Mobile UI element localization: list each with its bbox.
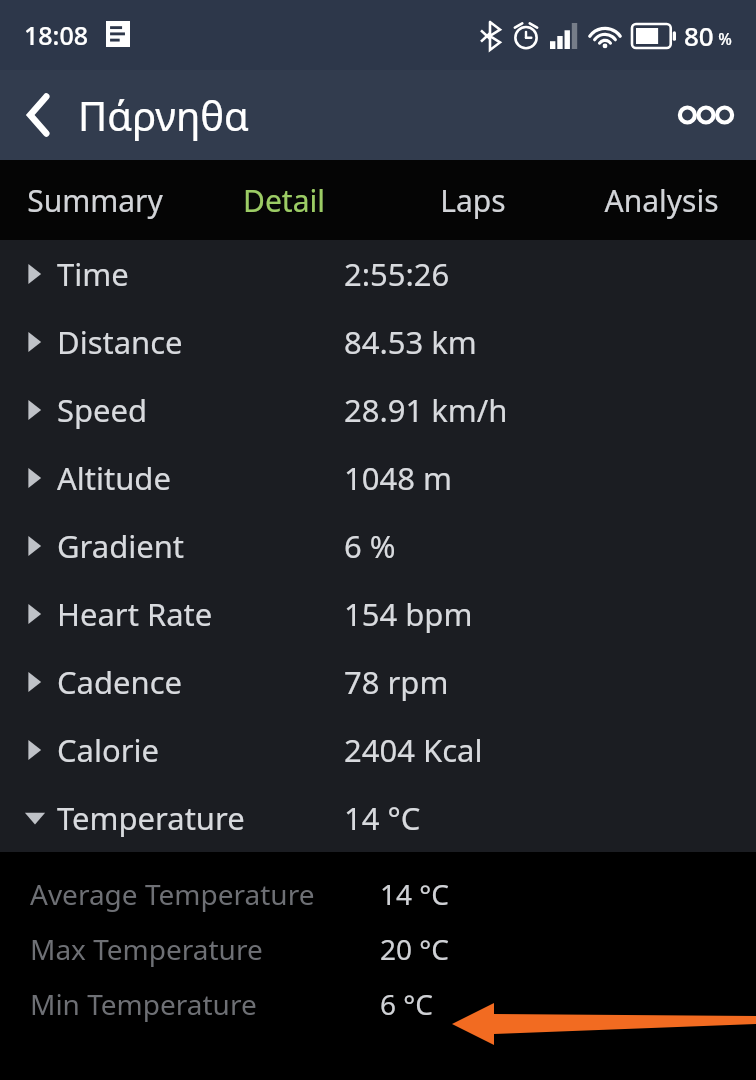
staticText: 14 °C [344, 797, 421, 839]
button[interactable]: Calorie [0, 716, 756, 784]
staticText: Calorie [57, 729, 160, 771]
staticText: Max Temperature [30, 930, 263, 968]
staticText: 14 °C [380, 875, 449, 913]
staticText: 2404 Kcal [344, 729, 483, 771]
staticText: Time [57, 253, 129, 295]
button[interactable]: Gradient [0, 512, 756, 580]
staticText: 6 °C [380, 985, 433, 1023]
button[interactable]: Speed [0, 376, 756, 444]
staticText: % [714, 28, 732, 50]
button[interactable]: Laps [378, 160, 567, 240]
button[interactable]: Heart Rate [0, 580, 756, 648]
button[interactable]: Summary [0, 160, 189, 240]
staticText: Πάρνηθα [78, 88, 249, 142]
button[interactable]: Temperature [0, 784, 756, 852]
staticText: 28.91 km/h [344, 389, 508, 431]
staticText: Gradient [57, 525, 185, 567]
staticText: Detail [243, 180, 325, 221]
staticText: Average Temperature [30, 875, 315, 913]
staticText: Cadence [57, 661, 183, 703]
button[interactable]: Altitude [0, 444, 756, 512]
staticText: 20 °C [380, 930, 449, 968]
staticText: Analysis [604, 180, 719, 221]
staticText: Speed [57, 389, 148, 431]
button[interactable]: Distance [0, 308, 756, 376]
staticText: 78 rpm [344, 661, 449, 703]
staticText: Altitude [57, 457, 171, 499]
button[interactable]: Max Temperature [0, 921, 756, 976]
button[interactable]: Detail [189, 160, 378, 240]
button[interactable]: Time [0, 240, 756, 308]
staticText: 18:08 [24, 18, 89, 52]
button[interactable]: Cadence [0, 648, 756, 716]
other: Back [26, 94, 52, 136]
button[interactable]: Average Temperature [0, 866, 756, 921]
staticText: Laps [440, 180, 506, 221]
staticText: 80 [684, 18, 714, 53]
staticText: 84.53 km [344, 321, 477, 363]
staticText: Heart Rate [57, 593, 213, 635]
button[interactable]: Analysis [567, 160, 756, 240]
staticText: 154 bpm [344, 593, 473, 635]
staticText: 2:55:26 [344, 253, 450, 295]
button[interactable]: Back [0, 70, 249, 160]
button[interactable]: More options [656, 70, 756, 160]
staticText: Temperature [57, 797, 245, 839]
staticText: Distance [57, 321, 183, 363]
staticText: Min Temperature [30, 985, 257, 1023]
staticText: 1048 m [344, 457, 452, 499]
staticText: 6 % [344, 525, 396, 567]
staticText: Summary [27, 180, 163, 221]
button[interactable]: Min Temperature [0, 976, 756, 1031]
